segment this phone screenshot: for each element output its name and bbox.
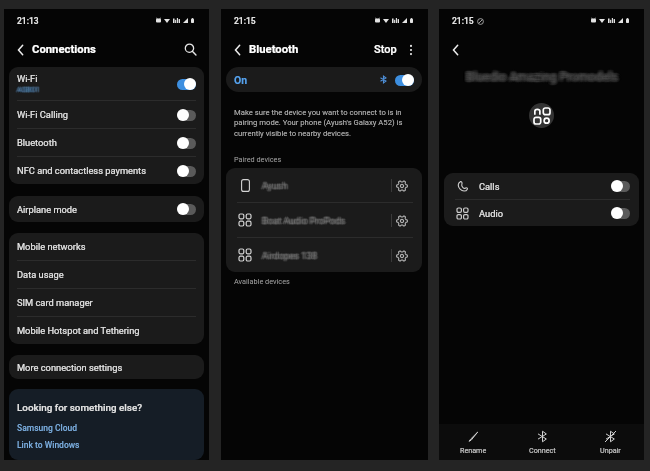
button[interactable]: Airplane mode xyxy=(9,196,204,222)
staticText: Boat Audio ProPods xyxy=(263,215,347,226)
staticText: Wi-Fi Calling xyxy=(17,109,69,120)
staticText: Boat Audio ProPods xyxy=(264,215,348,226)
staticText: ASB01 xyxy=(15,86,38,95)
button[interactable]: On xyxy=(226,67,422,92)
button[interactable]: Bluetooth xyxy=(9,129,204,157)
staticText: Airdopes 138 xyxy=(261,249,316,260)
staticText: Bluedio Amazing Promodels xyxy=(466,72,618,86)
button[interactable]: Mobile Hotspot and Tethering xyxy=(9,317,204,344)
staticText: Airdopes 138 xyxy=(263,250,318,261)
staticText: ASB01 xyxy=(17,85,40,94)
staticText: Bluedio Amazing Promodels xyxy=(464,71,616,85)
staticText: 21:15 xyxy=(234,16,256,26)
button[interactable] xyxy=(177,108,196,122)
staticText: ASB01 xyxy=(18,86,41,95)
staticText: Available devices xyxy=(234,277,290,286)
staticText: ASB01 xyxy=(18,84,41,93)
staticText: ASB01 xyxy=(17,83,40,92)
staticText: Boat Audio ProPods xyxy=(261,215,345,226)
staticText: Bluedio Amazing Promodels xyxy=(464,72,616,86)
button[interactable] xyxy=(177,202,196,216)
staticText: ASB01 xyxy=(18,86,41,95)
staticText: ASB01 xyxy=(17,84,40,93)
button[interactable]: Wi-Fi xyxy=(9,67,204,101)
staticText: ASB01 xyxy=(16,85,39,94)
staticText: Boat Audio ProPods xyxy=(262,214,346,225)
staticText: Boat Audio ProPods xyxy=(263,216,347,227)
staticText: Ayush xyxy=(261,180,287,191)
staticText: ASB01 xyxy=(17,85,40,94)
staticText: Boat Audio ProPods xyxy=(264,215,348,226)
staticText: ASB01 xyxy=(18,84,41,93)
button[interactable]: Audio xyxy=(444,200,639,226)
staticText: Airdopes 138 xyxy=(262,250,317,261)
button[interactable]: Device settings xyxy=(393,212,410,229)
staticText: Calls xyxy=(479,181,500,192)
button[interactable]: SIM card manager xyxy=(9,289,204,317)
staticText: Bluedio Amazing Promodels xyxy=(470,70,622,84)
staticText: Airdopes 138 xyxy=(261,250,316,261)
staticText: Ayush xyxy=(260,179,286,190)
button[interactable]: Wi-Fi Calling xyxy=(9,101,204,129)
button[interactable]: Search xyxy=(181,40,200,59)
staticText: Ayush xyxy=(262,182,288,193)
button[interactable]: Ayush xyxy=(226,168,422,203)
staticText: Boat Audio ProPods xyxy=(261,215,345,226)
staticText: Airdopes 138 xyxy=(263,249,318,260)
button[interactable] xyxy=(177,77,196,91)
staticText: Airdopes 138 xyxy=(265,250,320,261)
staticText: ASB01 xyxy=(15,85,38,94)
staticText: ASB01 xyxy=(18,84,41,93)
staticText: Bluedio Amazing Promodels xyxy=(465,68,617,82)
staticText: Airdopes 138 xyxy=(263,250,318,261)
button[interactable]: Connect xyxy=(508,424,576,460)
staticText: ASB01 xyxy=(16,86,39,95)
staticText: Ayush xyxy=(263,179,289,190)
button[interactable]: More connection settings xyxy=(9,355,204,379)
button[interactable]: Calls xyxy=(444,173,639,199)
button[interactable]: Back xyxy=(12,41,29,58)
button[interactable]: Unpair xyxy=(576,424,644,460)
button[interactable]: Device settings xyxy=(393,247,410,264)
button[interactable]: Stop xyxy=(372,43,399,56)
button[interactable]: NFC and contactless payments xyxy=(9,157,204,184)
button[interactable]: Airdopes 138 xyxy=(226,238,422,272)
button[interactable] xyxy=(611,179,630,193)
button[interactable]: Rename xyxy=(439,424,508,460)
staticText: Airplane mode xyxy=(17,204,78,215)
button[interactable] xyxy=(395,73,414,87)
staticText: Bluedio Amazing Promodels xyxy=(465,69,617,83)
staticText: Bluedio Amazing Promodels xyxy=(464,68,616,82)
staticText: Ayush xyxy=(261,181,287,192)
button[interactable]: Back xyxy=(447,41,464,58)
staticText: Ayush xyxy=(261,180,287,191)
button[interactable] xyxy=(177,164,196,178)
button[interactable]: Mobile networks xyxy=(9,233,204,261)
staticText: Boat Audio ProPods xyxy=(263,215,347,226)
button[interactable]: More options xyxy=(403,42,419,58)
staticText: Boat Audio ProPods xyxy=(261,215,345,226)
staticText: Ayush xyxy=(262,178,288,189)
button[interactable]: Link to Windows xyxy=(17,440,80,450)
staticText: Ayush xyxy=(263,181,289,192)
staticText: Airdopes 138 xyxy=(260,249,315,260)
staticText: Airdopes 138 xyxy=(262,250,317,261)
button[interactable]: Boat Audio ProPods xyxy=(226,203,422,238)
button[interactable]: Back xyxy=(229,41,246,58)
button[interactable] xyxy=(611,206,630,220)
staticText: Airdopes 138 xyxy=(263,251,318,262)
button[interactable]: Device settings xyxy=(393,177,410,194)
button[interactable] xyxy=(177,136,196,150)
staticText: Bluedio Amazing Promodels xyxy=(468,71,620,85)
staticText: Boat Audio ProPods xyxy=(261,214,345,225)
staticText: ASB01 xyxy=(18,86,41,95)
button[interactable]: Samsung Cloud xyxy=(17,423,78,433)
staticText: ASB01 xyxy=(18,86,41,95)
staticText: Airdopes 138 xyxy=(262,251,317,262)
staticText: Airdopes 138 xyxy=(262,250,317,261)
staticText: Ayush xyxy=(265,180,291,191)
staticText: Bluedio Amazing Promodels xyxy=(467,71,619,85)
button[interactable]: Data usage xyxy=(9,261,204,289)
staticText: Boat Audio ProPods xyxy=(264,214,348,225)
staticText: ASB01 xyxy=(16,84,39,93)
